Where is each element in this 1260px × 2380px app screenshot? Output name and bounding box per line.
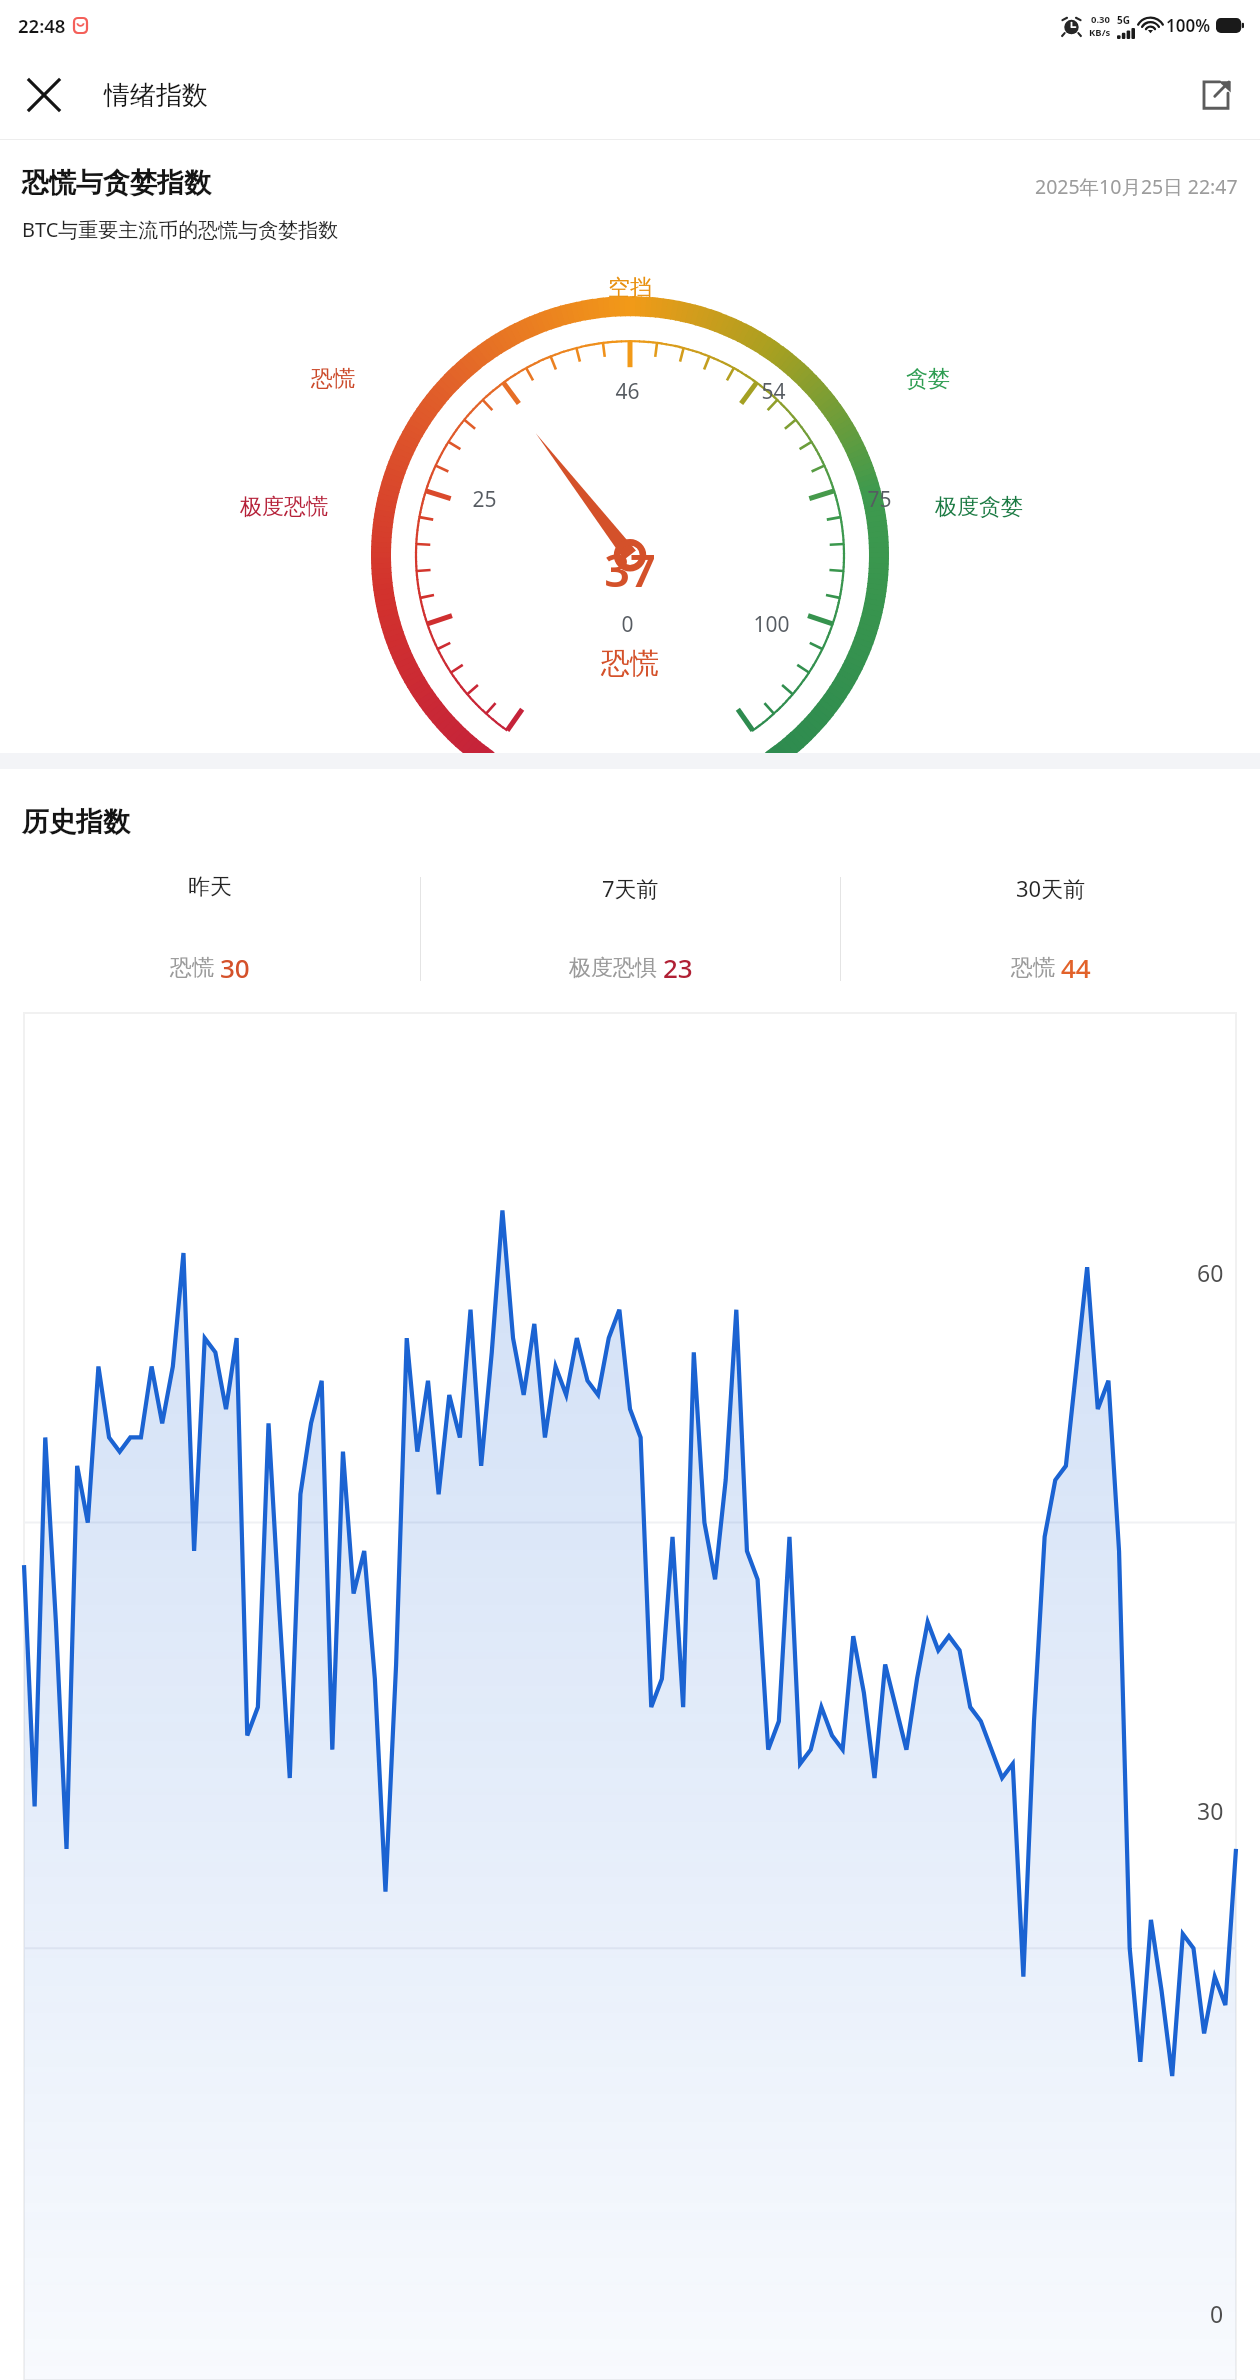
button[interactable]: 7天前 [421,873,840,985]
button[interactable]: 昨天 [0,873,420,985]
staticText: 恐慌 [1011,954,1055,982]
staticText: 恐慌 [170,954,214,982]
staticText: 昨天 [188,873,232,901]
staticText: 100 [753,610,790,639]
staticText: 75 [867,485,892,514]
staticText: 0.30 [1091,13,1110,26]
staticText: 44 [1061,950,1091,985]
staticText: 极度恐慌 [240,493,328,521]
staticText: 25 [472,485,497,514]
staticText: 23 [663,950,693,985]
staticText: 恐慌 [601,645,659,682]
staticText: 30天前 [1016,873,1086,903]
staticText: 情绪指数 [104,79,208,112]
staticText: 0 [1210,2298,1224,2329]
staticText: 0 [621,610,634,639]
staticText: 极度恐惧 [569,954,657,982]
staticText: 100% [1166,14,1211,37]
staticText: 贪婪 [906,365,950,393]
staticText: 恐慌与贪婪指数 [22,166,211,200]
button[interactable]: Close [0,51,88,139]
staticText: 37 [604,539,656,600]
staticText: 22:48 [18,13,66,38]
button[interactable]: 30天前 [841,873,1260,985]
staticText: 30 [1197,1795,1224,1826]
staticText: 恐慌 [311,365,355,393]
button[interactable]: Share [1172,51,1260,139]
staticText: KB/s [1089,26,1111,39]
staticText: 54 [761,377,786,406]
staticText: 2025年10月25日 22:47 [1035,173,1238,200]
staticText: 60 [1197,1257,1224,1288]
staticText: 极度贪婪 [935,493,1023,521]
staticText: 7天前 [602,873,659,903]
staticText: 空挡 [608,274,652,302]
staticText: 46 [615,377,640,406]
staticText: 30 [220,950,250,985]
staticText: 历史指数 [22,805,130,839]
staticText: 5G [1117,13,1130,27]
staticText: BTC与重要主流币的恐慌与贪婪指数 [22,216,339,243]
